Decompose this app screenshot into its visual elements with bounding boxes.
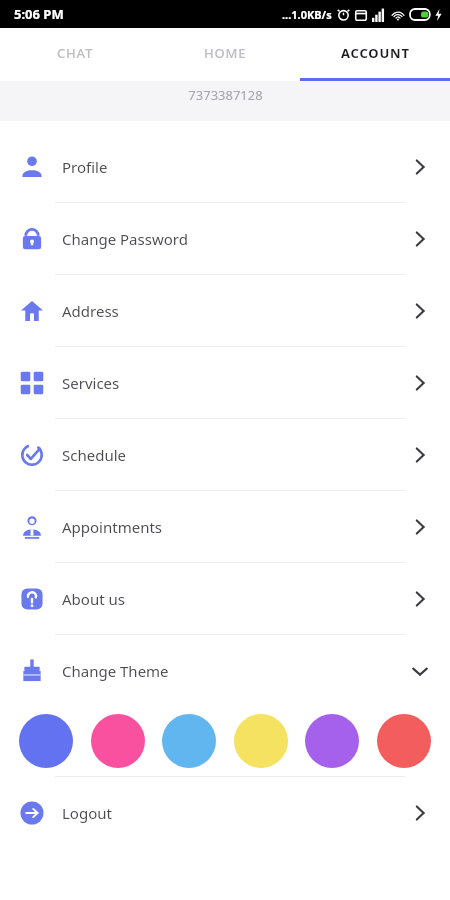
staticText: Services bbox=[62, 373, 410, 393]
button[interactable]: Theme color 4 bbox=[234, 714, 288, 768]
button[interactable]: Schedule bbox=[0, 419, 450, 490]
staticText: 7373387128 bbox=[188, 86, 263, 104]
button[interactable]: Change Theme bbox=[0, 635, 450, 706]
button[interactable]: Theme color 3 bbox=[162, 714, 216, 768]
staticText: Address bbox=[62, 301, 410, 321]
button[interactable]: HOME bbox=[150, 28, 300, 78]
button[interactable]: Theme color 2 bbox=[91, 714, 145, 768]
button[interactable]: Services bbox=[0, 347, 450, 418]
button[interactable]: Profile bbox=[0, 131, 450, 202]
button[interactable]: CHAT bbox=[0, 28, 150, 78]
staticText: Change Password bbox=[62, 229, 410, 249]
staticText: CHAT bbox=[57, 44, 94, 62]
button[interactable]: Address bbox=[0, 275, 450, 346]
staticText: 5:06 PM bbox=[14, 5, 64, 23]
staticText: Appointments bbox=[62, 517, 410, 537]
button[interactable]: Theme color 6 bbox=[377, 714, 431, 768]
staticText: HOME bbox=[204, 44, 247, 62]
button[interactable]: Logout bbox=[0, 777, 450, 848]
staticText: Logout bbox=[62, 803, 410, 823]
staticText: Schedule bbox=[62, 445, 410, 465]
staticText: ...1.0KB/s bbox=[282, 7, 332, 22]
button[interactable]: Change Password bbox=[0, 203, 450, 274]
staticText: Change Theme bbox=[62, 661, 410, 681]
button[interactable]: Appointments bbox=[0, 491, 450, 562]
button[interactable]: About us bbox=[0, 563, 450, 634]
button[interactable]: Theme color 1 bbox=[19, 714, 73, 768]
staticText: Profile bbox=[62, 157, 410, 177]
staticText: ACCOUNT bbox=[341, 44, 410, 62]
button[interactable]: Theme color 5 bbox=[305, 714, 359, 768]
button[interactable]: ACCOUNT bbox=[300, 28, 450, 78]
staticText: About us bbox=[62, 589, 410, 609]
